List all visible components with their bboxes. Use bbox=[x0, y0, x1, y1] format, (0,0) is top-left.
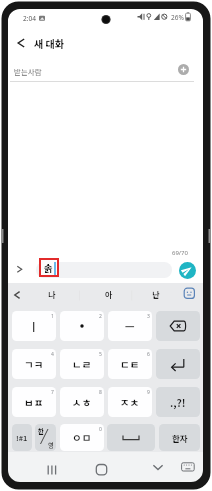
staticText: !#1 bbox=[16, 432, 28, 443]
staticText: 26% bbox=[171, 13, 184, 22]
button[interactable]: ㄷㅌ bbox=[108, 349, 152, 379]
staticText: 6 bbox=[147, 351, 150, 358]
staticText: 7 bbox=[51, 389, 54, 396]
button[interactable] bbox=[179, 458, 197, 474]
staticText: .,?! bbox=[170, 395, 186, 410]
staticText: ㅇㅁ bbox=[72, 430, 92, 445]
button[interactable]: ㅂㅍ bbox=[12, 387, 56, 417]
staticText: 5 bbox=[99, 351, 102, 358]
staticText: 난 bbox=[152, 289, 160, 301]
button[interactable] bbox=[178, 64, 189, 75]
staticText: ㅂㅍ bbox=[24, 395, 44, 410]
button[interactable]: ㄴㄹ bbox=[60, 349, 104, 379]
button[interactable]: ㅈㅊ bbox=[108, 387, 152, 417]
button[interactable] bbox=[179, 262, 196, 279]
staticText: ㅡ bbox=[125, 319, 135, 334]
staticText: 1 bbox=[51, 313, 54, 320]
button[interactable] bbox=[183, 287, 196, 300]
button[interactable] bbox=[10, 289, 24, 301]
staticText: 2 bbox=[99, 313, 102, 320]
staticText: ㅅㅎ bbox=[72, 395, 92, 410]
staticText: 8 bbox=[99, 389, 102, 396]
staticText: 아 bbox=[105, 289, 113, 301]
button[interactable]: 난 bbox=[137, 286, 174, 303]
staticText: 4 bbox=[51, 351, 54, 358]
staticText: 나 bbox=[48, 289, 56, 301]
staticText: 한자 bbox=[172, 432, 188, 444]
button[interactable] bbox=[92, 460, 111, 478]
staticText: ㄴㄹ bbox=[72, 357, 92, 372]
staticText: 새 대화 bbox=[34, 36, 64, 49]
button[interactable]: ㅡ bbox=[108, 311, 152, 341]
button[interactable] bbox=[156, 349, 200, 379]
button[interactable]: ㅇㅁ bbox=[60, 424, 104, 451]
button[interactable]: 나 bbox=[33, 286, 70, 303]
staticText: 한 bbox=[38, 426, 44, 435]
staticText: 영 bbox=[48, 440, 54, 449]
button[interactable]: ㅅㅎ bbox=[60, 387, 104, 417]
button[interactable] bbox=[150, 459, 166, 475]
button[interactable] bbox=[156, 311, 200, 341]
staticText: ㄱㅋ bbox=[24, 357, 44, 372]
button[interactable]: 2 bbox=[60, 311, 104, 341]
staticText: 0 bbox=[99, 426, 102, 433]
staticText: 9 bbox=[147, 389, 150, 396]
button[interactable]: !#1 bbox=[12, 424, 32, 451]
staticText: 3 bbox=[147, 313, 150, 320]
button[interactable]: ㅣ bbox=[12, 311, 56, 341]
button[interactable] bbox=[36, 262, 172, 278]
button[interactable] bbox=[12, 35, 28, 51]
staticText: 받는사람 bbox=[14, 66, 42, 77]
staticText: ㅣ bbox=[29, 319, 39, 334]
staticText: ㄷㅌ bbox=[120, 357, 140, 372]
staticText: 69/70 bbox=[172, 249, 188, 257]
button[interactable]: 한자 bbox=[159, 424, 200, 451]
button[interactable] bbox=[42, 460, 62, 478]
staticText: 솕 bbox=[44, 261, 53, 275]
button[interactable]: 한 bbox=[35, 424, 56, 451]
button[interactable]: ㄱㅋ bbox=[12, 349, 56, 379]
button[interactable] bbox=[107, 424, 155, 451]
button[interactable]: .,?! bbox=[156, 387, 200, 417]
button[interactable]: 아 bbox=[90, 286, 127, 303]
staticText: 2:04 bbox=[23, 14, 36, 23]
staticText: ㅈㅊ bbox=[120, 395, 140, 410]
